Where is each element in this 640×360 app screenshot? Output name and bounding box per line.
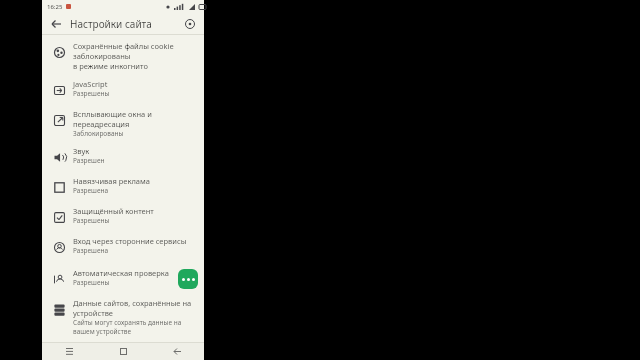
staticText: Вход через сторонние сервисы <box>73 236 187 246</box>
staticText: Разрешен <box>73 156 105 165</box>
staticText: устройстве <box>73 308 113 318</box>
button[interactable]: Навязчивая реклама <box>42 169 204 199</box>
staticText: Сохранённые файлы cookie заблокированы <box>73 41 196 61</box>
button[interactable]: Всплывающие окна и <box>42 102 204 139</box>
button[interactable]: Back <box>150 343 204 360</box>
staticText: Заблокированы <box>73 129 124 138</box>
button[interactable]: Back <box>48 16 64 32</box>
button[interactable]: Help <box>182 16 198 32</box>
staticText: Всплывающие окна и <box>73 109 152 119</box>
staticText: Защищённый контент <box>73 206 154 216</box>
staticText: Разрешена <box>73 246 109 255</box>
staticText: Автоматическая проверка <box>73 268 169 278</box>
button[interactable]: Автоматическая проверка <box>42 259 204 291</box>
staticText: Разрешена <box>73 186 109 195</box>
staticText: Разрешены <box>73 216 110 225</box>
button[interactable]: Звук <box>42 139 204 169</box>
staticText: Сайты могут сохранять данные на <box>73 318 182 327</box>
staticText: Разрешены <box>73 89 110 98</box>
button[interactable]: Home <box>96 343 150 360</box>
button[interactable]: JavaScript <box>42 72 204 102</box>
staticText: Звук <box>73 146 90 156</box>
button[interactable]: Сохранённые файлы cookie заблокированы <box>42 35 204 72</box>
staticText: Данные сайтов, сохранённые на <box>73 298 192 308</box>
staticText: Настройки сайта <box>70 17 152 31</box>
staticText: 16:25 <box>47 3 63 11</box>
button[interactable]: More options <box>178 269 198 289</box>
staticText: вашем устройстве <box>73 327 132 336</box>
button[interactable]: Recents <box>42 343 96 360</box>
button[interactable]: Вход через сторонние сервисы <box>42 229 204 259</box>
staticText: Разрешены <box>73 278 110 287</box>
staticText: JavaScript <box>73 79 108 89</box>
button[interactable]: Защищённый контент <box>42 199 204 229</box>
staticText: Навязчивая реклама <box>73 176 150 186</box>
staticText: переадресация <box>73 119 130 129</box>
button[interactable]: Данные сайтов, сохранённые на <box>42 291 204 337</box>
staticText: в режиме инкогнито <box>73 61 148 71</box>
